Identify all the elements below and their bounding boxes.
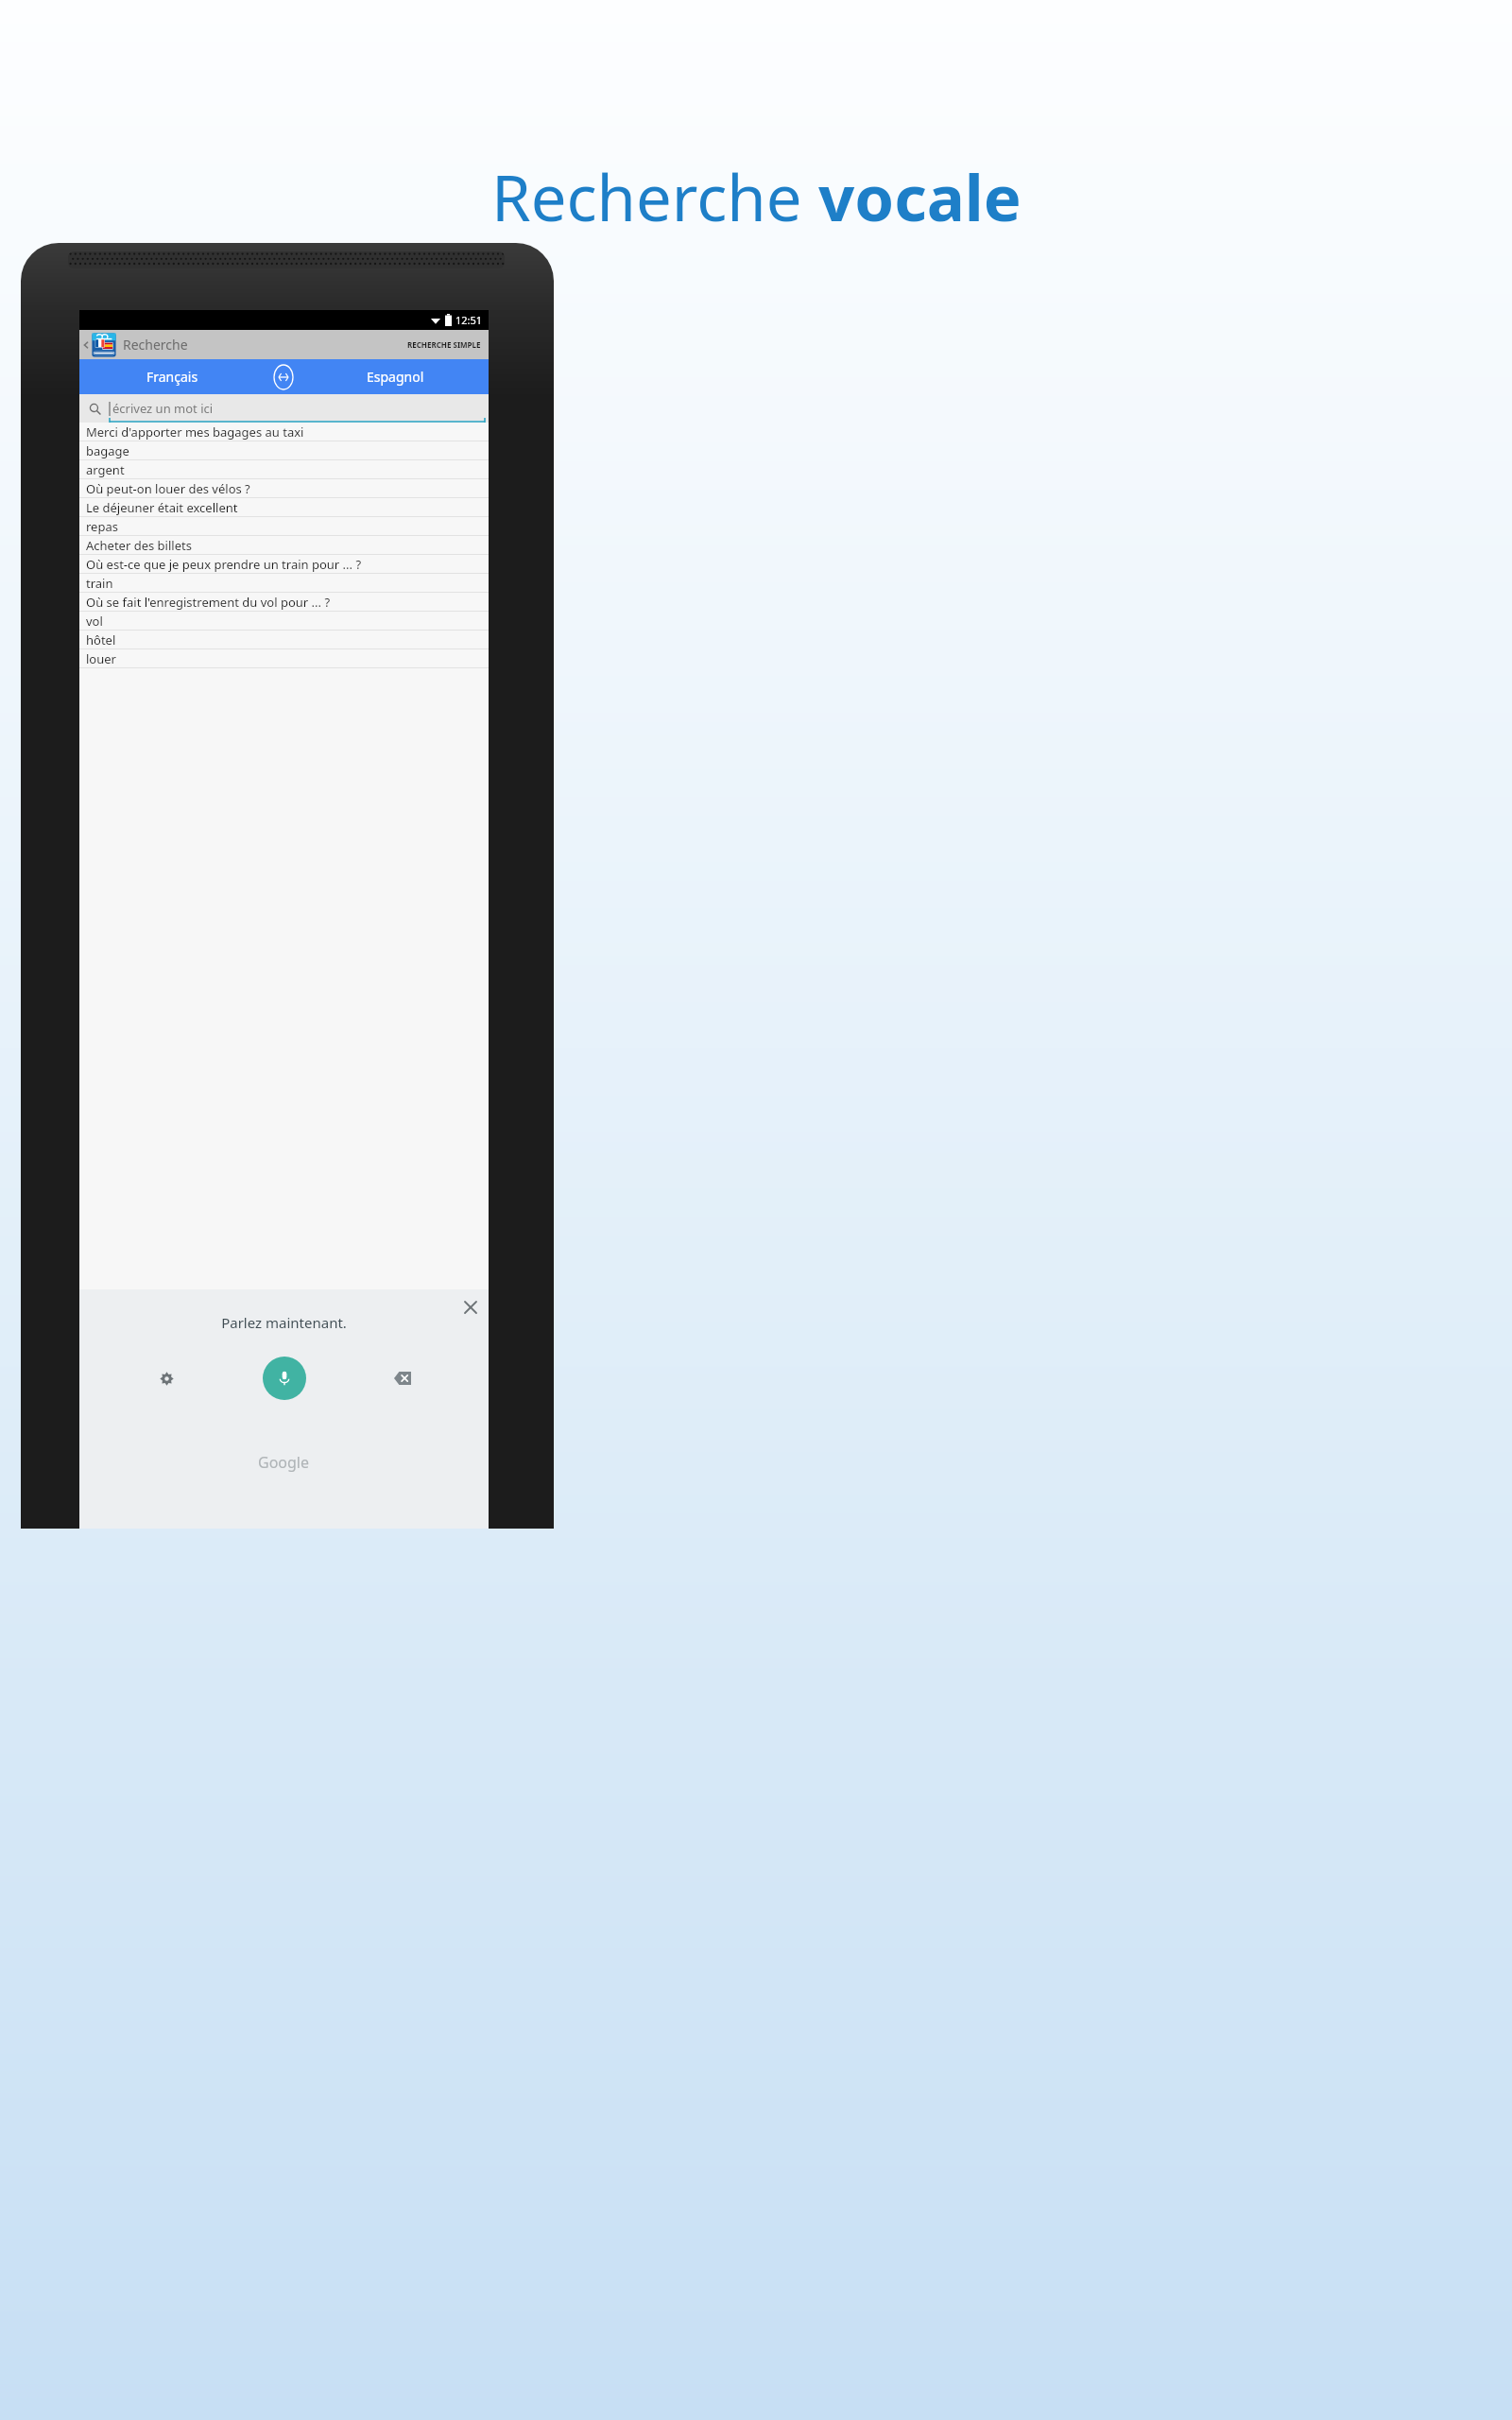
button[interactable]: repas [79,517,489,535]
button[interactable]: vol [79,612,489,630]
staticText: Où est-ce que je peux prendre un train p… [86,556,362,573]
staticText: train [86,575,113,592]
button[interactable]: Delete [388,1364,417,1392]
staticText: hôtel [86,631,116,648]
button[interactable]: Où est-ce que je peux prendre un train p… [79,555,489,573]
staticText: Où se fait l'enregistrement du vol pour … [86,594,331,611]
button[interactable]: RECHERCHE SIMPLE [400,330,489,359]
button[interactable]: Le déjeuner était excellent [79,498,489,516]
button[interactable]: écrivez un mot ici [79,394,489,423]
staticText: repas [86,518,118,535]
staticText: Français [146,368,198,386]
button[interactable]: hôtel [79,631,489,648]
button[interactable]: Merci d'apporter mes bagages au taxi [79,423,489,441]
button[interactable]: Swap languages [265,359,302,394]
staticText: RECHERCHE SIMPLE [407,339,481,350]
button[interactable]: Close [460,1297,481,1318]
button[interactable]: Back [79,330,91,359]
button[interactable]: bagage [79,441,489,459]
staticText: 12:51 [455,313,483,327]
staticText: Recherche [491,153,818,239]
staticText: vocale [818,153,1022,239]
button[interactable]: louer [79,649,489,667]
staticText: Parlez maintenant. [221,1313,347,1332]
staticText: écrivez un mot ici [112,400,214,417]
staticText: Merci d'apporter mes bagages au taxi [86,423,304,441]
button[interactable]: Settings [152,1364,180,1392]
staticText: bagage [86,442,129,459]
staticText: Où peut-on louer des vélos ? [86,480,250,497]
staticText: argent [86,461,125,478]
staticText: Le déjeuner était excellent [86,499,238,516]
button[interactable]: Où se fait l'enregistrement du vol pour … [79,593,489,611]
staticText: Acheter des billets [86,537,192,554]
button[interactable]: Microphone [263,1357,306,1400]
button[interactable]: Espagnol [302,359,489,394]
button[interactable]: argent [79,460,489,478]
staticText: Espagnol [367,368,424,386]
button[interactable]: train [79,574,489,592]
staticText: Google [258,1452,310,1473]
staticText: louer [86,650,116,667]
button[interactable]: Acheter des billets [79,536,489,554]
staticText: vol [86,613,103,630]
staticText: Recherche [123,336,188,354]
button[interactable]: Où peut-on louer des vélos ? [79,479,489,497]
button[interactable]: Français [79,359,265,394]
